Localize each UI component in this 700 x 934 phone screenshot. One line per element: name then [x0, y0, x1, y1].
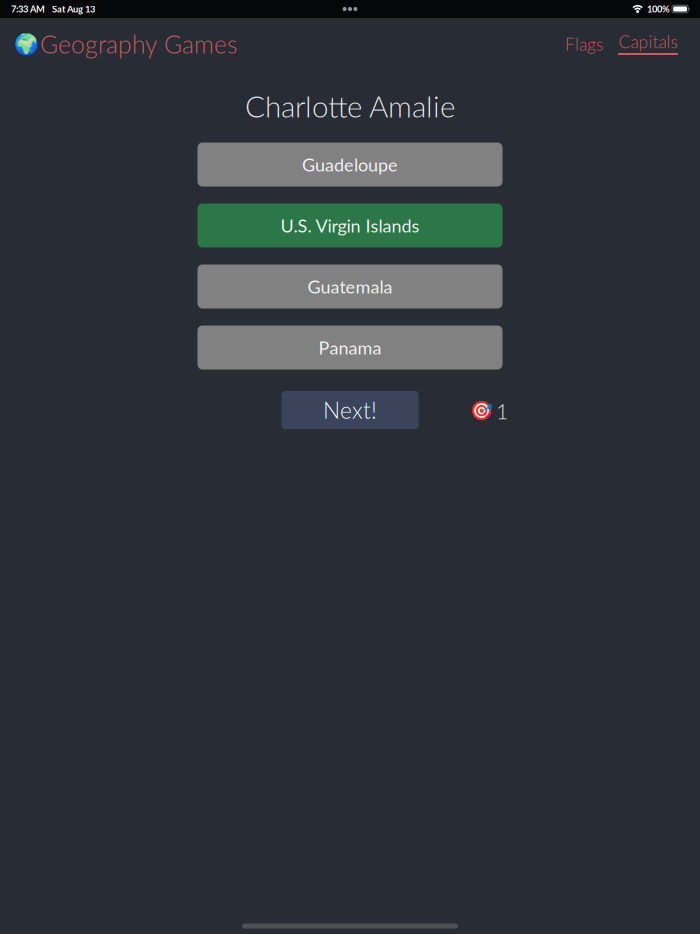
button[interactable]: Flags: [564, 32, 604, 56]
staticText: Charlotte Amalie: [245, 88, 455, 124]
staticText: Sat Aug 13: [52, 3, 95, 15]
button[interactable]: Next!: [281, 391, 418, 429]
staticText: 100%: [647, 3, 670, 15]
button[interactable]: Guadeloupe: [197, 142, 502, 186]
button[interactable]: U.S. Virgin Islands: [197, 203, 502, 247]
button[interactable]: Multitasking controls: [330, 0, 370, 18]
staticText: Next!: [323, 396, 377, 424]
staticText: Guatemala: [307, 276, 392, 297]
button[interactable]: Guatemala: [197, 264, 502, 308]
staticText: U.S. Virgin Islands: [280, 215, 419, 236]
button[interactable]: 🌍: [15, 27, 237, 61]
staticText: 7:33 AM: [11, 3, 45, 15]
staticText: Geography Games: [40, 29, 237, 59]
staticText: Guadeloupe: [302, 154, 398, 175]
button[interactable]: Panama: [197, 325, 502, 369]
staticText: Capitals: [618, 31, 677, 52]
staticText: 🌍: [14, 32, 39, 56]
staticText: 🎯: [470, 400, 493, 422]
button[interactable]: Capitals: [616, 31, 680, 57]
staticText: 1: [496, 398, 508, 424]
staticText: Flags: [565, 34, 603, 54]
staticText: Panama: [318, 337, 381, 358]
